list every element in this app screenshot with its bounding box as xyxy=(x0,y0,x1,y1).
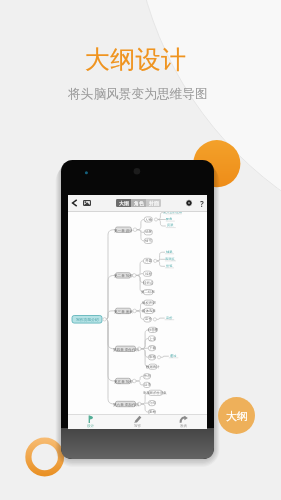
button[interactable]: 角色 xyxy=(131,199,146,207)
staticText: 铺垫 xyxy=(166,250,173,254)
staticText: 高潮点 xyxy=(165,257,175,261)
button[interactable]: 大纲 xyxy=(218,397,255,434)
staticText: 发表 xyxy=(180,424,188,429)
staticText: 添加新的作品集 xyxy=(143,391,167,395)
staticText: 介绍 xyxy=(149,401,156,405)
staticText: 写作 xyxy=(134,424,142,429)
staticText: 开篇 xyxy=(145,259,152,263)
staticText: 第二结局 xyxy=(141,290,155,294)
button[interactable]: 封面 xyxy=(146,199,161,207)
staticText: 第四章 添件作品 xyxy=(113,347,140,352)
staticText: 反派 xyxy=(167,223,174,227)
staticText: 配角 xyxy=(166,217,173,221)
staticText: 素材 xyxy=(149,410,156,414)
button[interactable]: Image xyxy=(80,195,93,211)
staticText: 转折点 xyxy=(143,281,154,285)
staticText: 第六章 添加作品 xyxy=(113,402,140,407)
staticText: 人物 xyxy=(145,218,152,222)
staticText: 封面 xyxy=(149,200,159,206)
staticText: 设计 xyxy=(87,424,95,429)
button[interactable]: 发表 xyxy=(161,415,207,429)
staticText: 角色 xyxy=(134,200,144,206)
staticText: 第一章 设计 xyxy=(114,228,133,233)
staticText: 上传 xyxy=(149,337,156,341)
staticText: 大纲 xyxy=(119,200,129,206)
staticText: 下载 xyxy=(149,346,156,350)
button[interactable]: Settings xyxy=(182,195,195,211)
button[interactable]: 大纲 xyxy=(116,199,131,207)
staticText: 媒体选择 xyxy=(142,309,156,313)
staticText: ? xyxy=(200,198,204,209)
button[interactable]: Back xyxy=(68,195,81,211)
staticText: 主人公的性格 xyxy=(163,210,183,214)
staticText: 场景 xyxy=(145,230,152,234)
staticText: 大纲设计 xyxy=(85,44,187,75)
staticText: 第五章 写作 xyxy=(114,379,133,384)
staticText: 定价 xyxy=(166,316,173,320)
staticText: 数据统计 xyxy=(146,365,160,369)
staticText: 封面图 xyxy=(148,328,159,332)
staticText: 通过 xyxy=(170,354,177,358)
staticText: 写作功能介绍 xyxy=(76,317,99,322)
staticText: 过程 xyxy=(145,272,152,276)
staticText: 作品 xyxy=(144,374,151,378)
staticText: 审核 xyxy=(149,355,156,359)
button[interactable]: Help xyxy=(196,195,207,211)
staticText: 第三章 发表 xyxy=(114,309,133,314)
staticText: 大纲 xyxy=(226,409,248,423)
button[interactable]: 写作 xyxy=(115,415,161,429)
staticText: 情节 xyxy=(145,239,152,243)
staticText: 第二章 写作 xyxy=(114,273,133,278)
staticText: 目录 xyxy=(144,383,151,387)
staticText: 伏笔 xyxy=(166,264,173,268)
staticText: 版权声明 xyxy=(142,301,156,305)
staticText: 将头脑风景变为思维导图 xyxy=(68,86,208,102)
button[interactable]: 设计 xyxy=(68,415,114,429)
staticText: 定价 xyxy=(145,317,152,321)
